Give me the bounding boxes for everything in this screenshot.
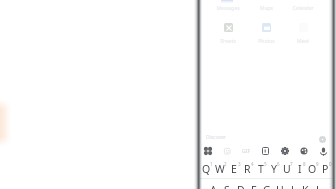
button[interactable]: S: [220, 179, 234, 189]
button[interactable]: Keyboard tool 1: [201, 144, 215, 158]
button[interactable]: Keyboard tool 3: [239, 144, 253, 158]
button[interactable]: Messages: [210, 0, 246, 12]
staticText: E: [231, 162, 237, 176]
button[interactable]: T: [254, 158, 267, 178]
staticText: 4: [251, 161, 254, 167]
staticText: W: [215, 162, 225, 176]
staticText: 6: [277, 161, 280, 167]
staticText: 5: [264, 161, 267, 167]
staticText: Q: [202, 162, 211, 176]
button[interactable]: P: [319, 158, 332, 178]
staticText: R: [244, 162, 251, 176]
staticText: L: [316, 183, 322, 189]
button[interactable]: Calendar: [285, 0, 321, 12]
button[interactable]: W: [213, 158, 227, 178]
staticText: I: [298, 162, 302, 176]
button[interactable]: Keyboard tool 6: [297, 144, 311, 158]
button[interactable]: Sheets: [210, 23, 246, 45]
staticText: A: [210, 183, 217, 189]
button[interactable]: K: [299, 179, 312, 189]
staticText: Discover: [206, 134, 227, 141]
staticText: 2: [224, 161, 227, 167]
staticText: H: [276, 183, 284, 189]
staticText: J: [291, 183, 294, 189]
staticText: 3: [238, 161, 241, 167]
button[interactable]: U: [280, 158, 293, 178]
button[interactable]: Meet: [285, 23, 321, 45]
staticText: F: [251, 183, 257, 189]
staticText: GIF: [242, 148, 251, 155]
staticText: U: [283, 162, 291, 176]
button[interactable]: R: [241, 158, 254, 178]
button[interactable]: F: [247, 179, 260, 189]
button[interactable]: A: [206, 179, 220, 189]
button[interactable]: Keyboard tool 4: [258, 144, 272, 158]
button[interactable]: E: [227, 158, 241, 178]
staticText: Photos: [258, 38, 275, 45]
button[interactable]: G: [260, 179, 273, 189]
button[interactable]: Photos: [248, 23, 284, 45]
button[interactable]: Keyboard tool 7: [316, 144, 330, 158]
button[interactable]: J: [286, 179, 299, 189]
staticText: Maps: [260, 5, 273, 12]
button[interactable]: H: [273, 179, 286, 189]
button[interactable]: Discover: [199, 130, 332, 144]
staticText: Y: [271, 162, 277, 176]
staticText: 8: [303, 161, 306, 167]
button[interactable]: Settings: [318, 135, 327, 144]
staticText: T: [258, 162, 264, 176]
staticText: 9: [316, 161, 319, 167]
staticText: K: [302, 183, 309, 189]
button[interactable]: I: [293, 158, 306, 178]
staticText: G: [263, 183, 271, 189]
button[interactable]: L: [312, 179, 325, 189]
button[interactable]: Keyboard tool 2: [220, 144, 234, 158]
staticText: Sheets: [220, 38, 236, 45]
staticText: 0: [329, 161, 332, 167]
staticText: Meet: [297, 38, 309, 45]
staticText: P: [322, 162, 329, 176]
staticText: D: [237, 183, 245, 189]
staticText: S: [224, 183, 230, 189]
staticText: 7: [290, 161, 293, 167]
button[interactable]: Q: [199, 158, 213, 178]
staticText: Messages: [216, 5, 240, 12]
staticText: Calendar: [292, 5, 314, 12]
button[interactable]: Y: [267, 158, 280, 178]
button[interactable]: O: [306, 158, 319, 178]
button[interactable]: D: [234, 179, 247, 189]
button[interactable]: Maps: [248, 0, 284, 12]
button[interactable]: Keyboard tool 5: [278, 144, 292, 158]
staticText: O: [308, 162, 317, 176]
staticText: 1: [210, 161, 213, 167]
